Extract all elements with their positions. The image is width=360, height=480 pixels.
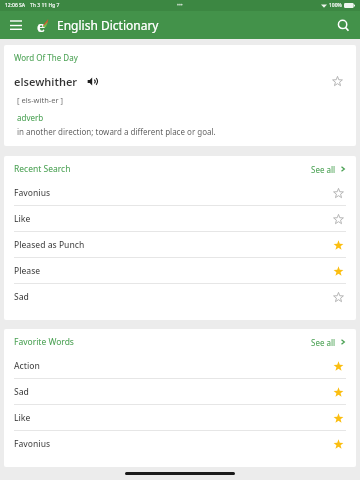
button[interactable]: Pronounce word — [85, 74, 99, 88]
staticText: Word Of The Day — [14, 52, 78, 63]
staticText: Favorite Words — [14, 336, 74, 348]
staticText: Action — [14, 360, 40, 372]
button[interactable]: Add Sad to favorites — [330, 289, 346, 305]
staticText: elsewhither — [14, 74, 78, 89]
staticText: English Dictionary — [57, 17, 159, 33]
staticText: Favonius — [14, 187, 51, 199]
staticText: [ els-with-er ] — [17, 95, 63, 105]
button[interactable]: Favorite Words — [4, 329, 356, 353]
button[interactable]: Remove Please from favorites — [330, 263, 346, 279]
staticText: Favonius — [14, 438, 51, 450]
button[interactable]: Add Like to favorites — [330, 211, 346, 227]
button[interactable]: Remove Like from favorites — [330, 410, 346, 426]
staticText: Please — [14, 265, 41, 277]
staticText: See all — [311, 164, 336, 175]
button[interactable]: Add to favorites — [328, 72, 346, 90]
button[interactable]: Add Favonius to favorites — [330, 185, 346, 201]
staticText: Sad — [14, 291, 29, 303]
staticText: ••• — [177, 2, 183, 9]
button[interactable]: Remove Pleased as Punch from favorites — [330, 237, 346, 253]
button[interactable]: Remove Favonius from favorites — [330, 436, 346, 452]
staticText: e — [37, 17, 46, 33]
staticText: adverb — [17, 112, 44, 123]
button[interactable]: Remove Action from favorites — [330, 358, 346, 374]
staticText: See all — [311, 337, 336, 348]
button[interactable]: Sad — [4, 379, 356, 404]
button[interactable]: Open navigation menu — [7, 16, 25, 34]
staticText: Recent Search — [14, 163, 71, 175]
staticText: 12:06 SA — [5, 2, 26, 9]
staticText: Sad — [14, 386, 29, 398]
button[interactable]: Like — [4, 206, 356, 231]
button[interactable]: Favonius — [4, 180, 356, 205]
button[interactable]: Search — [333, 15, 353, 35]
button[interactable]: Recent Search — [4, 156, 356, 180]
button[interactable]: Please — [4, 258, 356, 283]
button[interactable]: Action — [4, 353, 356, 378]
button[interactable]: Sad — [4, 284, 356, 309]
staticText: Like — [14, 213, 31, 225]
button[interactable]: Like — [4, 405, 356, 430]
staticText: in another direction; toward a different… — [17, 126, 216, 137]
staticText: Th 3 11 Hg 7 — [30, 2, 60, 9]
staticText: Like — [14, 412, 31, 424]
button[interactable]: Favonius — [4, 431, 356, 456]
button[interactable]: Remove Sad from favorites — [330, 384, 346, 400]
staticText: Pleased as Punch — [14, 239, 85, 251]
staticText: 100% — [329, 2, 342, 9]
button[interactable]: Pleased as Punch — [4, 232, 356, 257]
